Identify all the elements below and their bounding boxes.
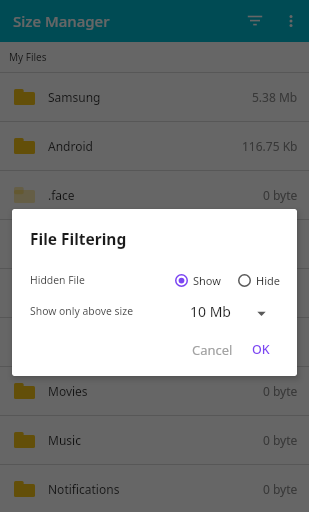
staticText: OK (252, 341, 270, 355)
button[interactable]: Hide (238, 273, 280, 288)
button[interactable]: Notifications (0, 465, 309, 512)
staticText: 10 Mb (190, 302, 231, 321)
staticText: Show only above size (30, 304, 134, 318)
staticText: 0 byte (263, 236, 298, 252)
button[interactable]: DCIM (0, 269, 309, 317)
staticText: Samsung (48, 89, 101, 105)
staticText: 0 byte (263, 285, 298, 301)
button[interactable]: More options (271, 1, 309, 41)
button[interactable]: Music (0, 416, 309, 464)
staticText: 0 byte (263, 334, 298, 350)
button[interactable]: Android (0, 122, 309, 170)
staticText: Hidden File (30, 273, 85, 287)
staticText: My Files (9, 50, 47, 64)
button[interactable]: Samsung (0, 73, 309, 121)
staticText: 5.38 Mb (252, 89, 298, 105)
staticText: Hide (256, 273, 280, 288)
staticText: Notifications (48, 481, 120, 497)
staticText: .face (48, 187, 75, 203)
staticText: 0 byte (263, 383, 298, 399)
button[interactable]: Filter (235, 1, 275, 41)
staticText: Movies (48, 383, 88, 399)
staticText: 0 byte (263, 432, 298, 448)
button[interactable]: Movies (0, 367, 309, 415)
staticText: 116.75 Kb (242, 138, 298, 154)
button[interactable]: .face (0, 171, 309, 219)
button[interactable]: Download (0, 318, 309, 366)
button[interactable]: OK (242, 335, 280, 361)
staticText: Show (193, 273, 221, 288)
button[interactable]: Cancel (183, 335, 242, 361)
staticText: Cancel (192, 341, 233, 355)
button[interactable]: 10 Mb (190, 302, 266, 321)
staticText: File Filtering (30, 228, 127, 249)
button[interactable]: Show (175, 273, 221, 288)
staticText: 0 byte (263, 481, 298, 497)
button[interactable]: Alarms (0, 220, 309, 268)
staticText: Music (48, 432, 81, 448)
staticText: Size Manager (13, 11, 110, 31)
staticText: Android (48, 138, 93, 154)
staticText: Alarms (48, 236, 88, 252)
staticText: 0 byte (263, 187, 298, 203)
